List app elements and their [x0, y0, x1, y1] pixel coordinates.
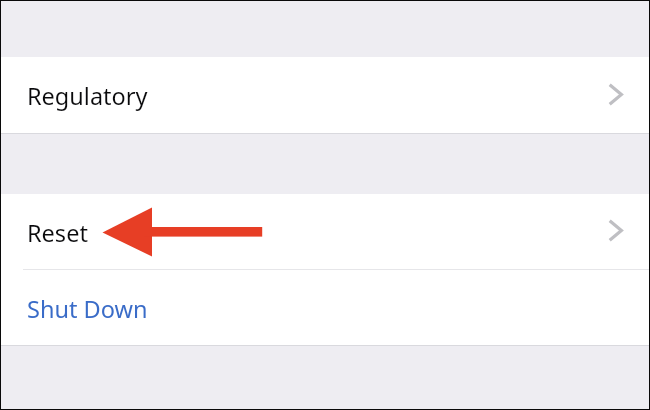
staticText: Shut Down: [27, 293, 148, 325]
staticText: Regulatory: [27, 80, 148, 112]
staticText: Reset: [27, 217, 88, 249]
button[interactable]: Shut Down: [1, 270, 649, 345]
button[interactable]: Regulatory: [1, 57, 649, 133]
other: Open Reset: [609, 220, 623, 241]
button[interactable]: Reset: [1, 194, 649, 269]
other: Open Regulatory: [609, 84, 623, 105]
